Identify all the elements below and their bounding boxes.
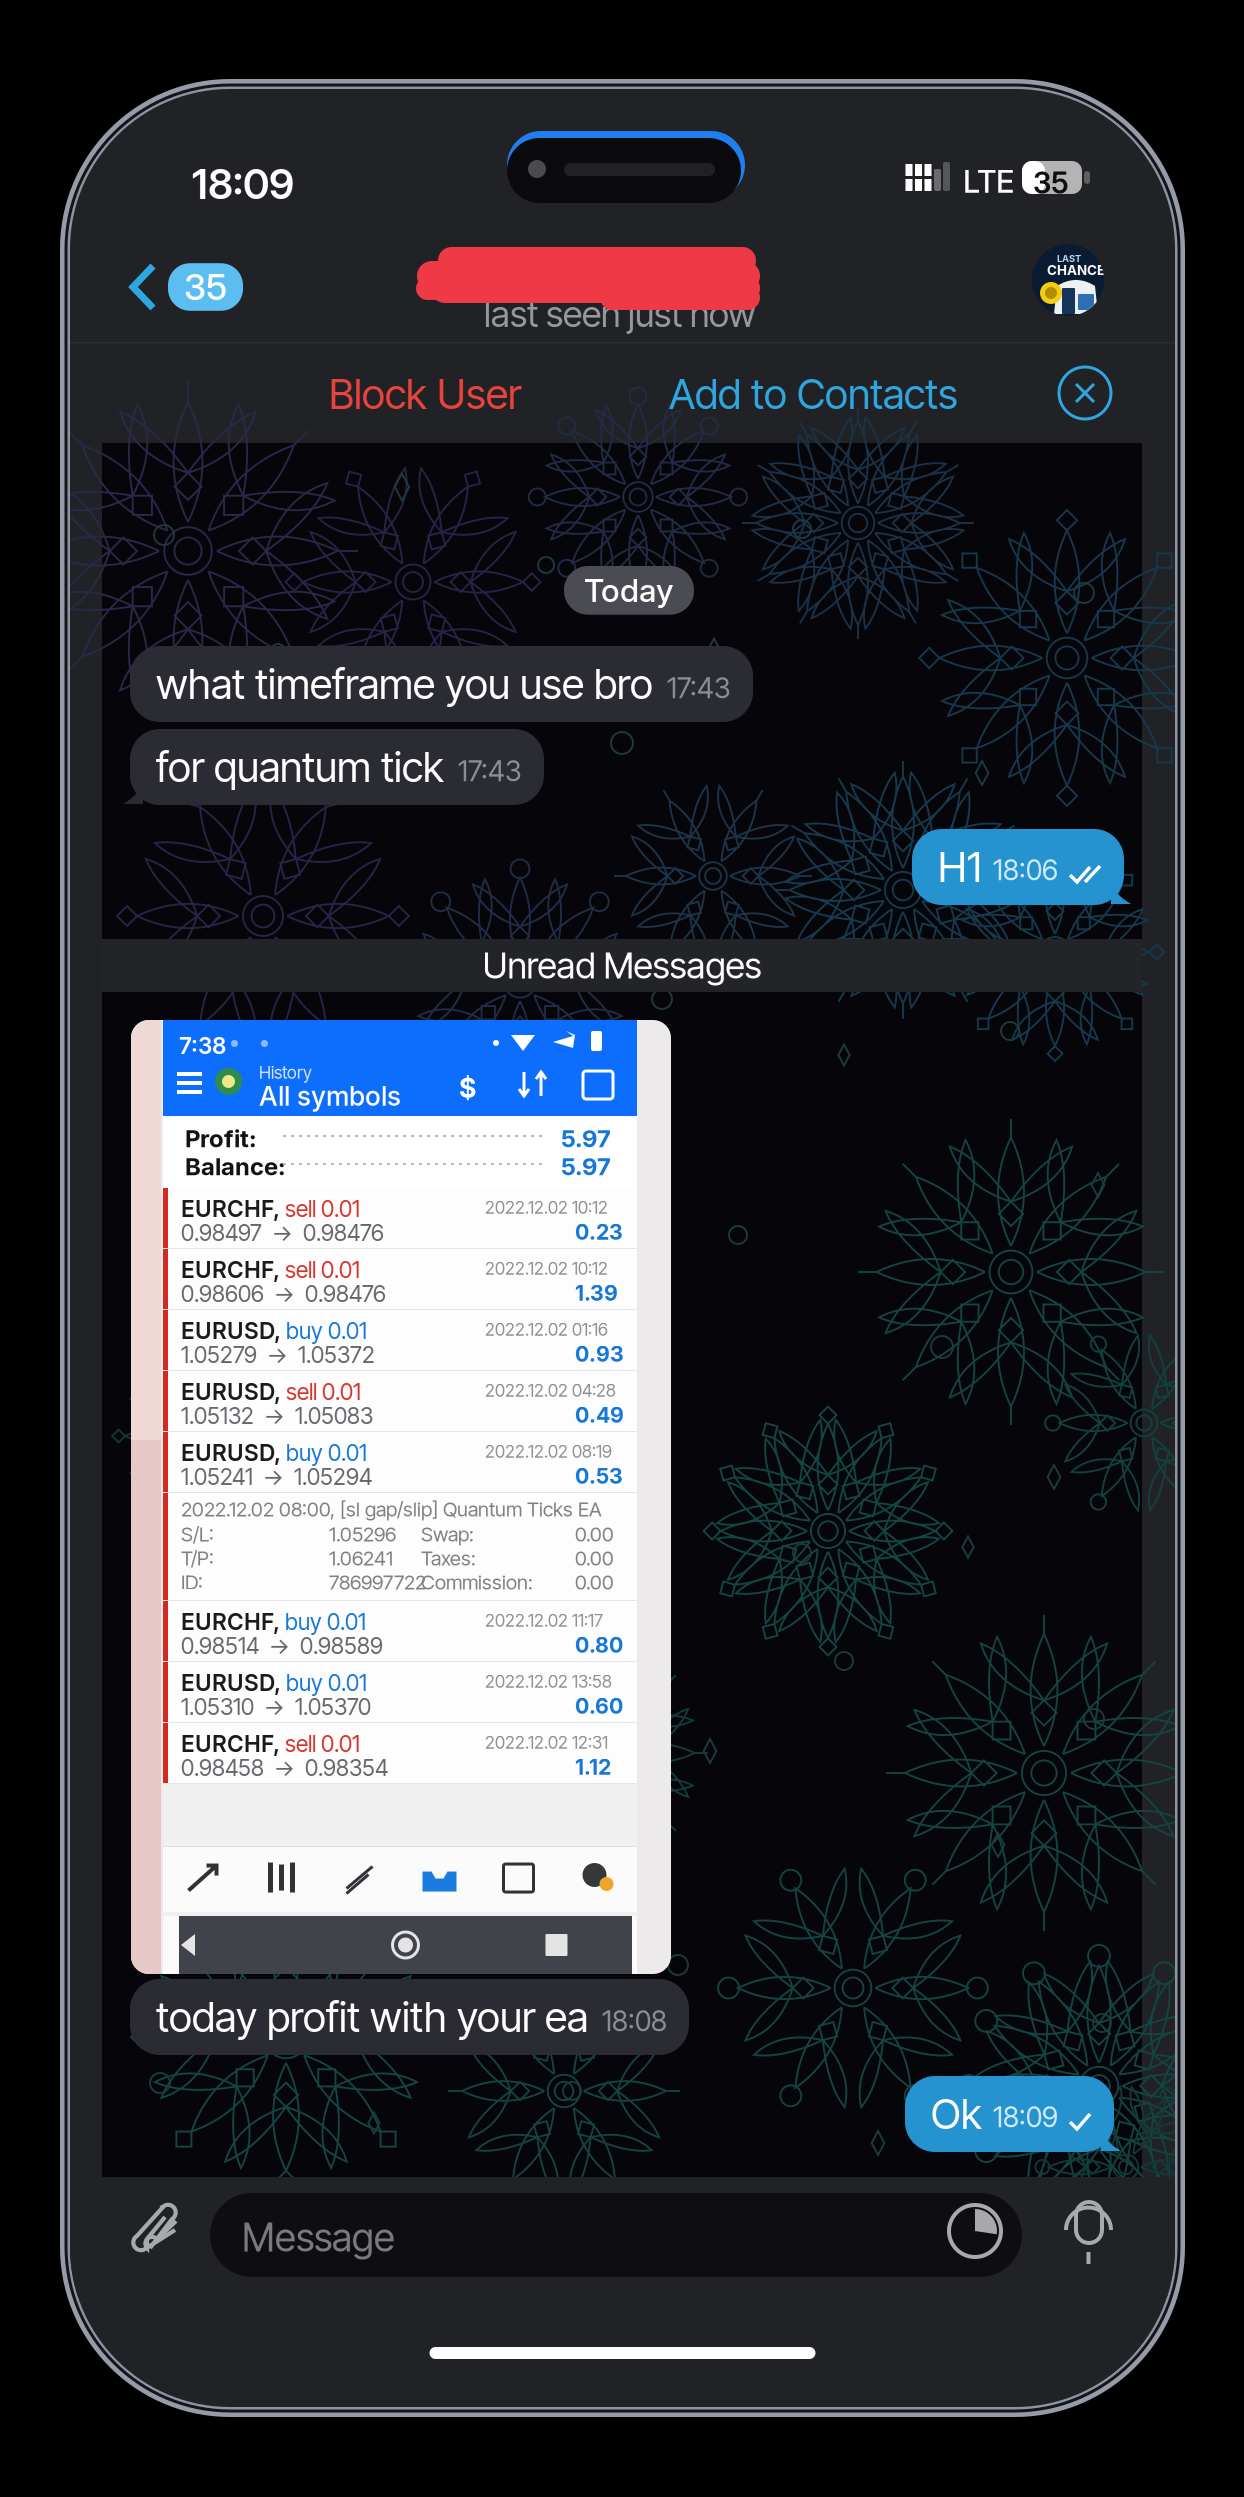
staticText: EURUSD,	[181, 1439, 281, 1466]
staticText: 0.23	[575, 1219, 623, 1245]
staticText: Unread Messages	[482, 944, 761, 987]
staticText: EURCHF,	[181, 1730, 280, 1757]
staticText: Ok	[931, 2089, 982, 2139]
staticText: 0.01	[321, 1730, 360, 1757]
staticText: 0.98514 → 0.98589	[181, 1632, 383, 1659]
staticText: 0.01	[321, 1195, 360, 1222]
staticText: T/P:	[181, 1546, 214, 1570]
staticText: All symbols	[259, 1080, 401, 1112]
staticText: $	[459, 1072, 476, 1104]
staticText: 0.01	[322, 1378, 361, 1405]
staticText: LAST	[1057, 253, 1081, 264]
staticText: Profit:	[185, 1124, 257, 1153]
staticText: 5.97	[561, 1124, 611, 1153]
staticText: 1.05310 → 1.05370	[181, 1693, 371, 1720]
staticText: 2022.12.02 04:28	[485, 1380, 616, 1401]
staticText: 1.05279 → 1.05372	[181, 1341, 375, 1368]
staticText: Taxes:	[421, 1546, 476, 1570]
staticText: 1.05241 → 1.05294	[181, 1463, 372, 1490]
staticText: 1.12	[575, 1754, 611, 1780]
staticText: H1	[938, 842, 982, 892]
staticText: buy	[286, 1317, 323, 1344]
staticText: 18:06	[993, 853, 1058, 887]
button[interactable]: Profile photo	[1032, 244, 1104, 316]
staticText: today profit with your ea	[156, 1992, 588, 2042]
staticText: 0.93	[575, 1341, 624, 1367]
staticText: Add to Contacts	[669, 369, 958, 419]
staticText: Block User	[329, 369, 521, 419]
staticText: EURUSD,	[181, 1317, 281, 1344]
staticText: 17:43	[667, 671, 731, 705]
staticText: 17:43	[458, 754, 522, 788]
button[interactable]: Dismiss	[1045, 353, 1125, 433]
staticText: 1.05132 → 1.05083	[181, 1402, 373, 1429]
staticText: Message	[242, 2214, 395, 2261]
staticText: 0.00	[575, 1546, 614, 1570]
staticText: sell	[285, 1256, 316, 1283]
staticText: what timeframe you use bro	[156, 659, 653, 709]
staticText: 0.53	[575, 1463, 623, 1489]
button[interactable]: Block User	[303, 347, 547, 441]
staticText: 0.00	[575, 1570, 614, 1594]
staticText: buy	[286, 1439, 323, 1466]
staticText: 18:09	[192, 159, 294, 209]
staticText: 2022.12.02 12:31	[485, 1732, 608, 1753]
staticText: for quantum tick	[156, 742, 444, 792]
staticText: 2022.12.02 08:19	[485, 1441, 612, 1462]
staticText: EURUSD,	[181, 1669, 281, 1696]
staticText: 0.49	[575, 1402, 624, 1428]
staticText: 0.60	[575, 1693, 623, 1719]
staticText: sell	[285, 1730, 316, 1757]
staticText: Today	[584, 571, 674, 610]
staticText: EURUSD,	[181, 1378, 281, 1405]
staticText: 0.80	[575, 1632, 623, 1658]
staticText: 1.39	[575, 1280, 618, 1306]
staticText: 2022.12.02 10:12	[485, 1258, 608, 1279]
staticText: 0.01	[328, 1317, 367, 1344]
staticText: 1.05296	[329, 1522, 396, 1546]
staticText: 0.01	[328, 1439, 367, 1466]
staticText: 0.98458 → 0.98354	[181, 1754, 388, 1781]
staticText: 7:38	[179, 1032, 226, 1059]
staticText: sell	[285, 1195, 316, 1222]
staticText: 0.01	[327, 1608, 366, 1635]
staticText: 1.06241	[329, 1546, 393, 1570]
staticText: 2022.12.02 08:00, [sl gap/slip] Quantum …	[181, 1497, 602, 1521]
staticText: 35	[184, 265, 227, 309]
staticText: 0.98497 → 0.98476	[181, 1219, 384, 1246]
staticText: Swap:	[421, 1522, 474, 1546]
staticText: 0.00	[575, 1522, 614, 1546]
staticText: buy	[285, 1608, 322, 1635]
staticText: LTE	[963, 163, 1014, 200]
staticText: EURCHF,	[181, 1195, 280, 1222]
staticText: ID:	[181, 1570, 203, 1594]
staticText: Commission:	[421, 1570, 533, 1594]
staticText: 5.97	[561, 1152, 611, 1181]
staticText: 786997722	[329, 1570, 426, 1594]
staticText: 2022.12.02 11:17	[485, 1610, 603, 1631]
staticText: 0.98606 → 0.98476	[181, 1280, 386, 1307]
staticText: 2022.12.02 10:12	[485, 1197, 608, 1218]
staticText: 35	[1033, 165, 1069, 200]
staticText: EURCHF,	[181, 1256, 280, 1283]
staticText: CHANCE	[1047, 262, 1105, 278]
staticText: EURCHF,	[181, 1608, 280, 1635]
staticText: 0.01	[328, 1669, 367, 1696]
staticText: 2022.12.02 13:58	[485, 1671, 612, 1692]
staticText: History	[259, 1062, 312, 1083]
staticText: S/L:	[181, 1522, 214, 1546]
staticText: buy	[286, 1669, 323, 1696]
staticText: 2022.12.02 01:16	[485, 1319, 608, 1340]
staticText: Balance:	[185, 1152, 286, 1181]
button[interactable]: Add to Contacts	[643, 347, 984, 441]
staticText: sell	[286, 1378, 317, 1405]
staticText: last seen just now	[484, 292, 756, 336]
staticText: 18:08	[602, 2004, 667, 2038]
button[interactable]: 35	[114, 250, 257, 324]
staticText: 0.01	[321, 1256, 360, 1283]
staticText: 18:09	[993, 2100, 1058, 2134]
